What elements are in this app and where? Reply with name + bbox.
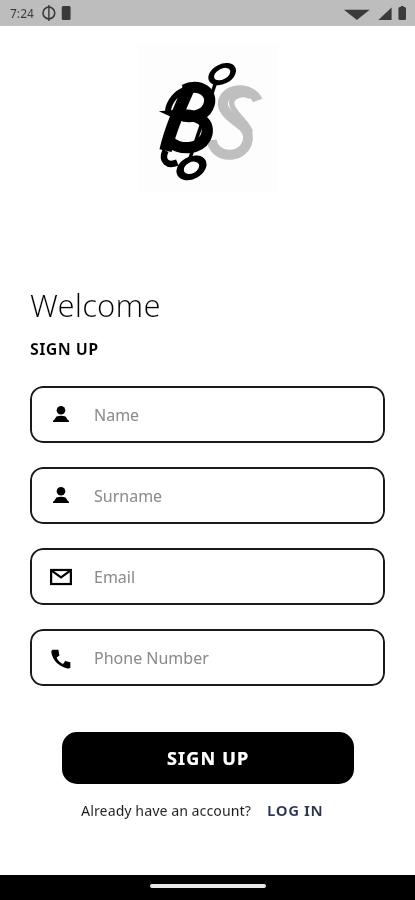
button[interactable]: SIGN UP — [62, 732, 354, 784]
button[interactable]: Phone Number — [30, 629, 385, 686]
button[interactable]: Surname — [30, 467, 385, 524]
staticText: 7:24 — [10, 5, 34, 21]
staticText: SIGN UP — [30, 338, 99, 360]
staticText: LOG IN — [267, 800, 324, 820]
button[interactable]: LOG IN — [256, 792, 335, 828]
staticText: SIGN UP — [167, 746, 250, 771]
staticText: Already have an account? — [81, 801, 252, 820]
staticText: Name — [94, 404, 140, 426]
staticText: Welcome — [30, 284, 161, 326]
staticText: Email — [94, 566, 136, 588]
button[interactable]: Name — [30, 386, 385, 443]
staticText: Phone Number — [94, 647, 209, 669]
staticText: Surname — [94, 485, 163, 507]
button[interactable]: Email — [30, 548, 385, 605]
